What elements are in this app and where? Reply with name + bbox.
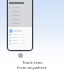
staticText: from anywhere [17, 65, 47, 70]
staticText: Track time [22, 60, 43, 65]
